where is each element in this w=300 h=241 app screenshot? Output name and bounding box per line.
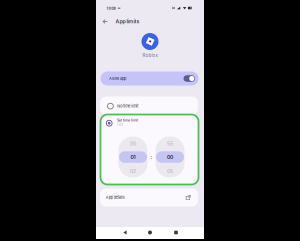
button[interactable]: No time limit bbox=[100, 96, 198, 114]
button[interactable]: Back bbox=[116, 227, 134, 238]
staticText: Set time limit bbox=[117, 118, 138, 122]
staticText: Allow app bbox=[109, 76, 126, 81]
staticText: 05 bbox=[167, 168, 173, 174]
button[interactable]: App details bbox=[100, 188, 198, 206]
staticText: 10:08 bbox=[107, 6, 116, 11]
staticText: : bbox=[150, 153, 152, 160]
staticText: 01 bbox=[130, 154, 135, 160]
staticText: App limits bbox=[115, 18, 139, 24]
staticText: App details bbox=[106, 195, 125, 200]
button[interactable]: Home bbox=[141, 227, 159, 238]
staticText: Roblox bbox=[142, 52, 157, 58]
button[interactable]: Recent apps bbox=[167, 227, 185, 238]
button[interactable]: Back bbox=[98, 14, 112, 28]
button[interactable]: Allow app bbox=[100, 71, 198, 85]
staticText: No time limit bbox=[117, 104, 138, 108]
staticText: 1:00 bbox=[117, 123, 123, 126]
staticText: 00 bbox=[130, 140, 136, 147]
staticText: 00 bbox=[167, 154, 173, 160]
staticText: 02 bbox=[130, 168, 136, 174]
staticText: 55 bbox=[167, 140, 173, 147]
